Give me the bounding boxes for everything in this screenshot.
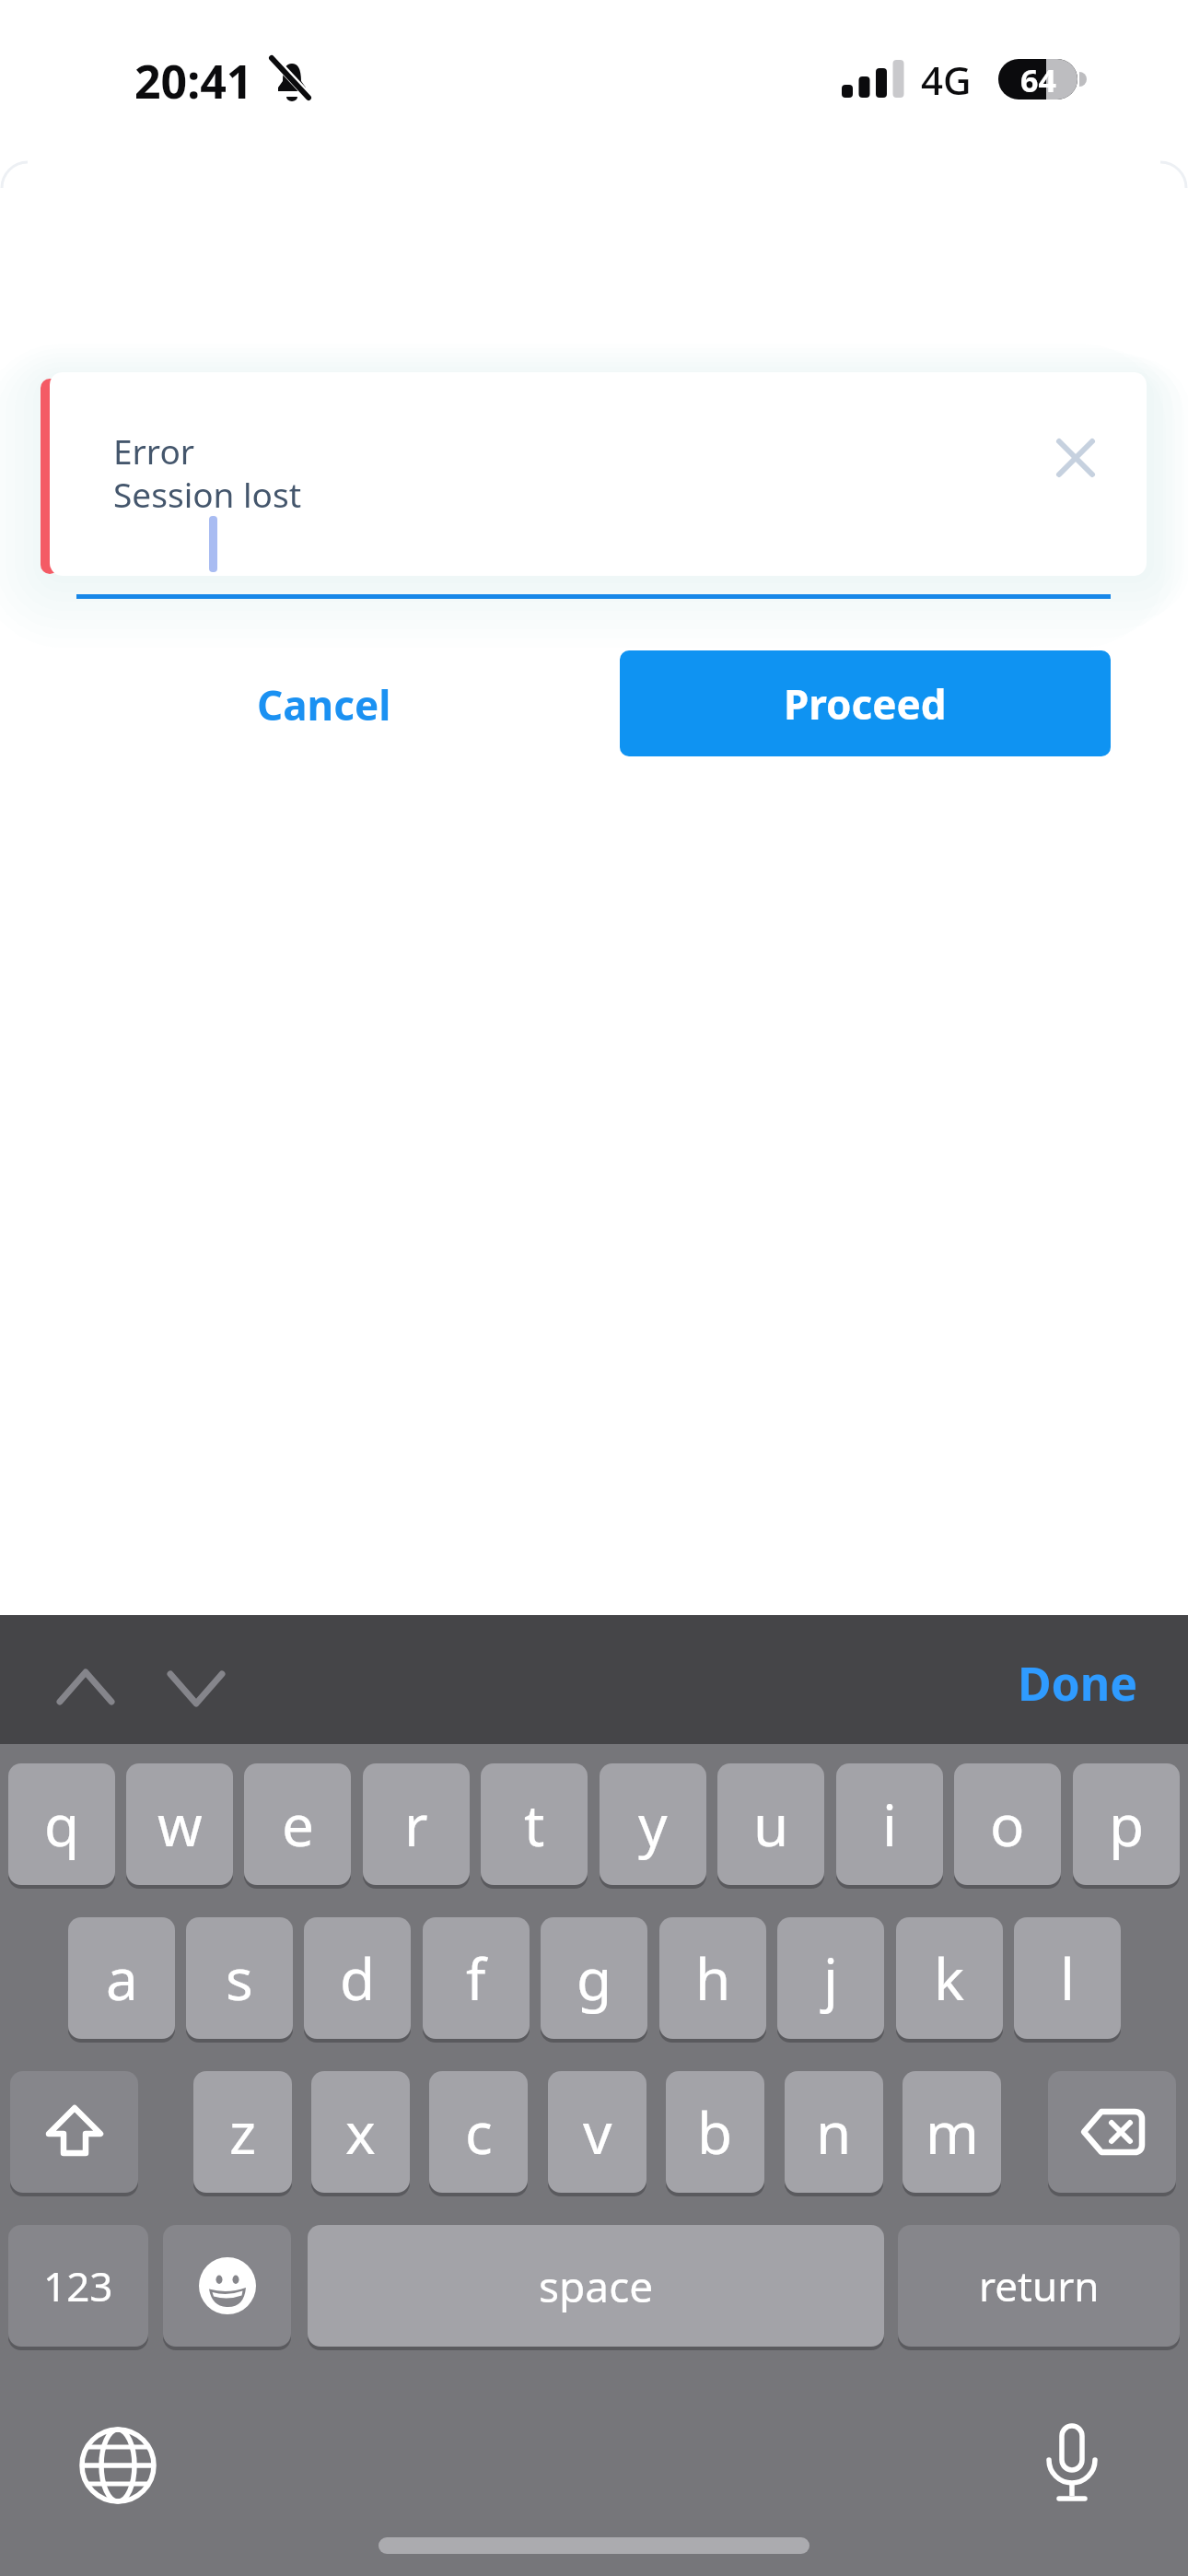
button[interactable]: space [308, 2225, 884, 2347]
staticText: l [1060, 1939, 1075, 2017]
staticText: q [44, 1786, 80, 1863]
button[interactable] [1048, 2071, 1176, 2193]
button[interactable]: l [1014, 1917, 1121, 2039]
staticText: Error [113, 427, 195, 474]
staticText: Done [1018, 1652, 1138, 1709]
staticText: return [979, 2258, 1100, 2313]
staticText: r [404, 1786, 428, 1863]
button[interactable]: u [717, 1763, 824, 1885]
button[interactable]: f [423, 1917, 530, 2039]
staticText: 123 [43, 2258, 113, 2313]
staticText: y [638, 1786, 668, 1863]
button[interactable]: h [659, 1917, 766, 2039]
staticText: j [823, 1939, 838, 2017]
staticText: u [753, 1786, 789, 1863]
staticText: 20:41 [134, 50, 253, 112]
staticText: Cancel [257, 677, 391, 732]
staticText: Proceed [784, 676, 947, 732]
staticText: e [282, 1786, 314, 1863]
button[interactable] [163, 2225, 291, 2347]
button[interactable]: o [954, 1763, 1061, 1885]
button[interactable]: x [311, 2071, 410, 2193]
staticText: f [466, 1939, 486, 2017]
button[interactable]: w [126, 1763, 233, 1885]
staticText: 4G [921, 53, 972, 106]
staticText: m [926, 2093, 979, 2171]
staticText: i [882, 1786, 897, 1863]
button[interactable]: z [193, 2071, 292, 2193]
button[interactable]: return [898, 2225, 1180, 2347]
staticText: t [524, 1786, 545, 1863]
button[interactable]: Proceed [620, 650, 1111, 756]
staticText: h [695, 1939, 731, 2017]
button[interactable]: a [68, 1917, 175, 2039]
button[interactable]: p [1073, 1763, 1180, 1885]
button[interactable] [1046, 428, 1105, 487]
button[interactable]: y [600, 1763, 706, 1885]
staticText: n [816, 2093, 852, 2171]
button[interactable]: j [777, 1917, 884, 2039]
button[interactable]: i [836, 1763, 943, 1885]
button[interactable]: e [244, 1763, 351, 1885]
staticText: space [539, 2257, 654, 2315]
staticText: b [697, 2093, 733, 2171]
button[interactable]: g [541, 1917, 647, 2039]
staticText: w [157, 1786, 203, 1863]
button[interactable] [10, 2071, 138, 2193]
staticText: x [345, 2093, 376, 2171]
button[interactable]: c [429, 2071, 528, 2193]
staticText: a [106, 1939, 138, 2017]
button[interactable]: s [186, 1917, 293, 2039]
button[interactable]: v [548, 2071, 646, 2193]
staticText: g [577, 1939, 612, 2017]
button[interactable]: m [903, 2071, 1001, 2193]
button[interactable]: Cancel [243, 675, 404, 734]
staticText: p [1109, 1786, 1145, 1863]
button[interactable]: t [481, 1763, 588, 1885]
staticText: o [990, 1786, 1025, 1863]
staticText: s [226, 1939, 253, 2017]
button[interactable] [72, 2419, 164, 2512]
staticText: z [229, 2093, 257, 2171]
staticText: Session lost [113, 471, 302, 517]
button[interactable]: d [304, 1917, 411, 2039]
button[interactable]: k [896, 1917, 1003, 2039]
button[interactable]: q [8, 1763, 115, 1885]
staticText: v [583, 2093, 612, 2171]
button[interactable]: b [666, 2071, 764, 2193]
staticText: k [934, 1939, 965, 2017]
button[interactable] [1026, 2419, 1118, 2512]
staticText: d [340, 1939, 376, 2017]
button[interactable]: 123 [8, 2225, 148, 2347]
button[interactable]: r [363, 1763, 470, 1885]
button[interactable]: Done [1004, 1652, 1151, 1709]
button[interactable]: n [785, 2071, 883, 2193]
staticText: 64 [1020, 59, 1056, 100]
staticText: c [465, 2093, 493, 2171]
